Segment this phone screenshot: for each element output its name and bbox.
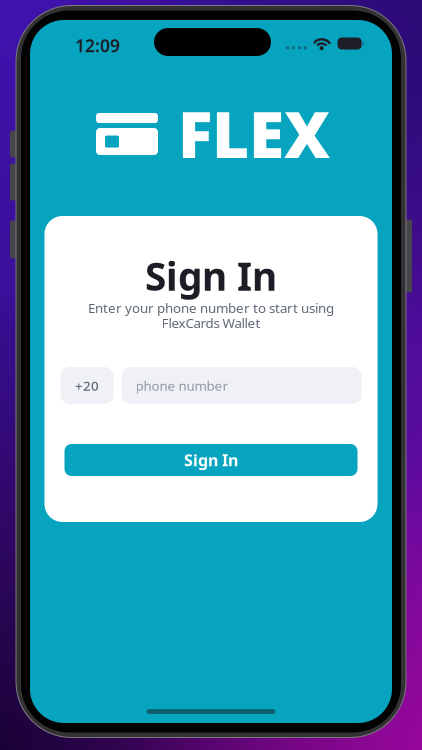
button[interactable]: Sign In <box>64 444 357 476</box>
staticText: phone number <box>135 377 228 394</box>
staticText: 12:09 <box>75 34 120 57</box>
staticText: Sign In <box>145 250 277 301</box>
staticText: Enter your phone number to start using <box>88 299 334 317</box>
staticText: +20 <box>75 377 99 394</box>
staticText: FLEX <box>178 91 330 176</box>
staticText: Sign In <box>184 449 238 471</box>
staticText: FlexCards Wallet <box>161 314 260 332</box>
